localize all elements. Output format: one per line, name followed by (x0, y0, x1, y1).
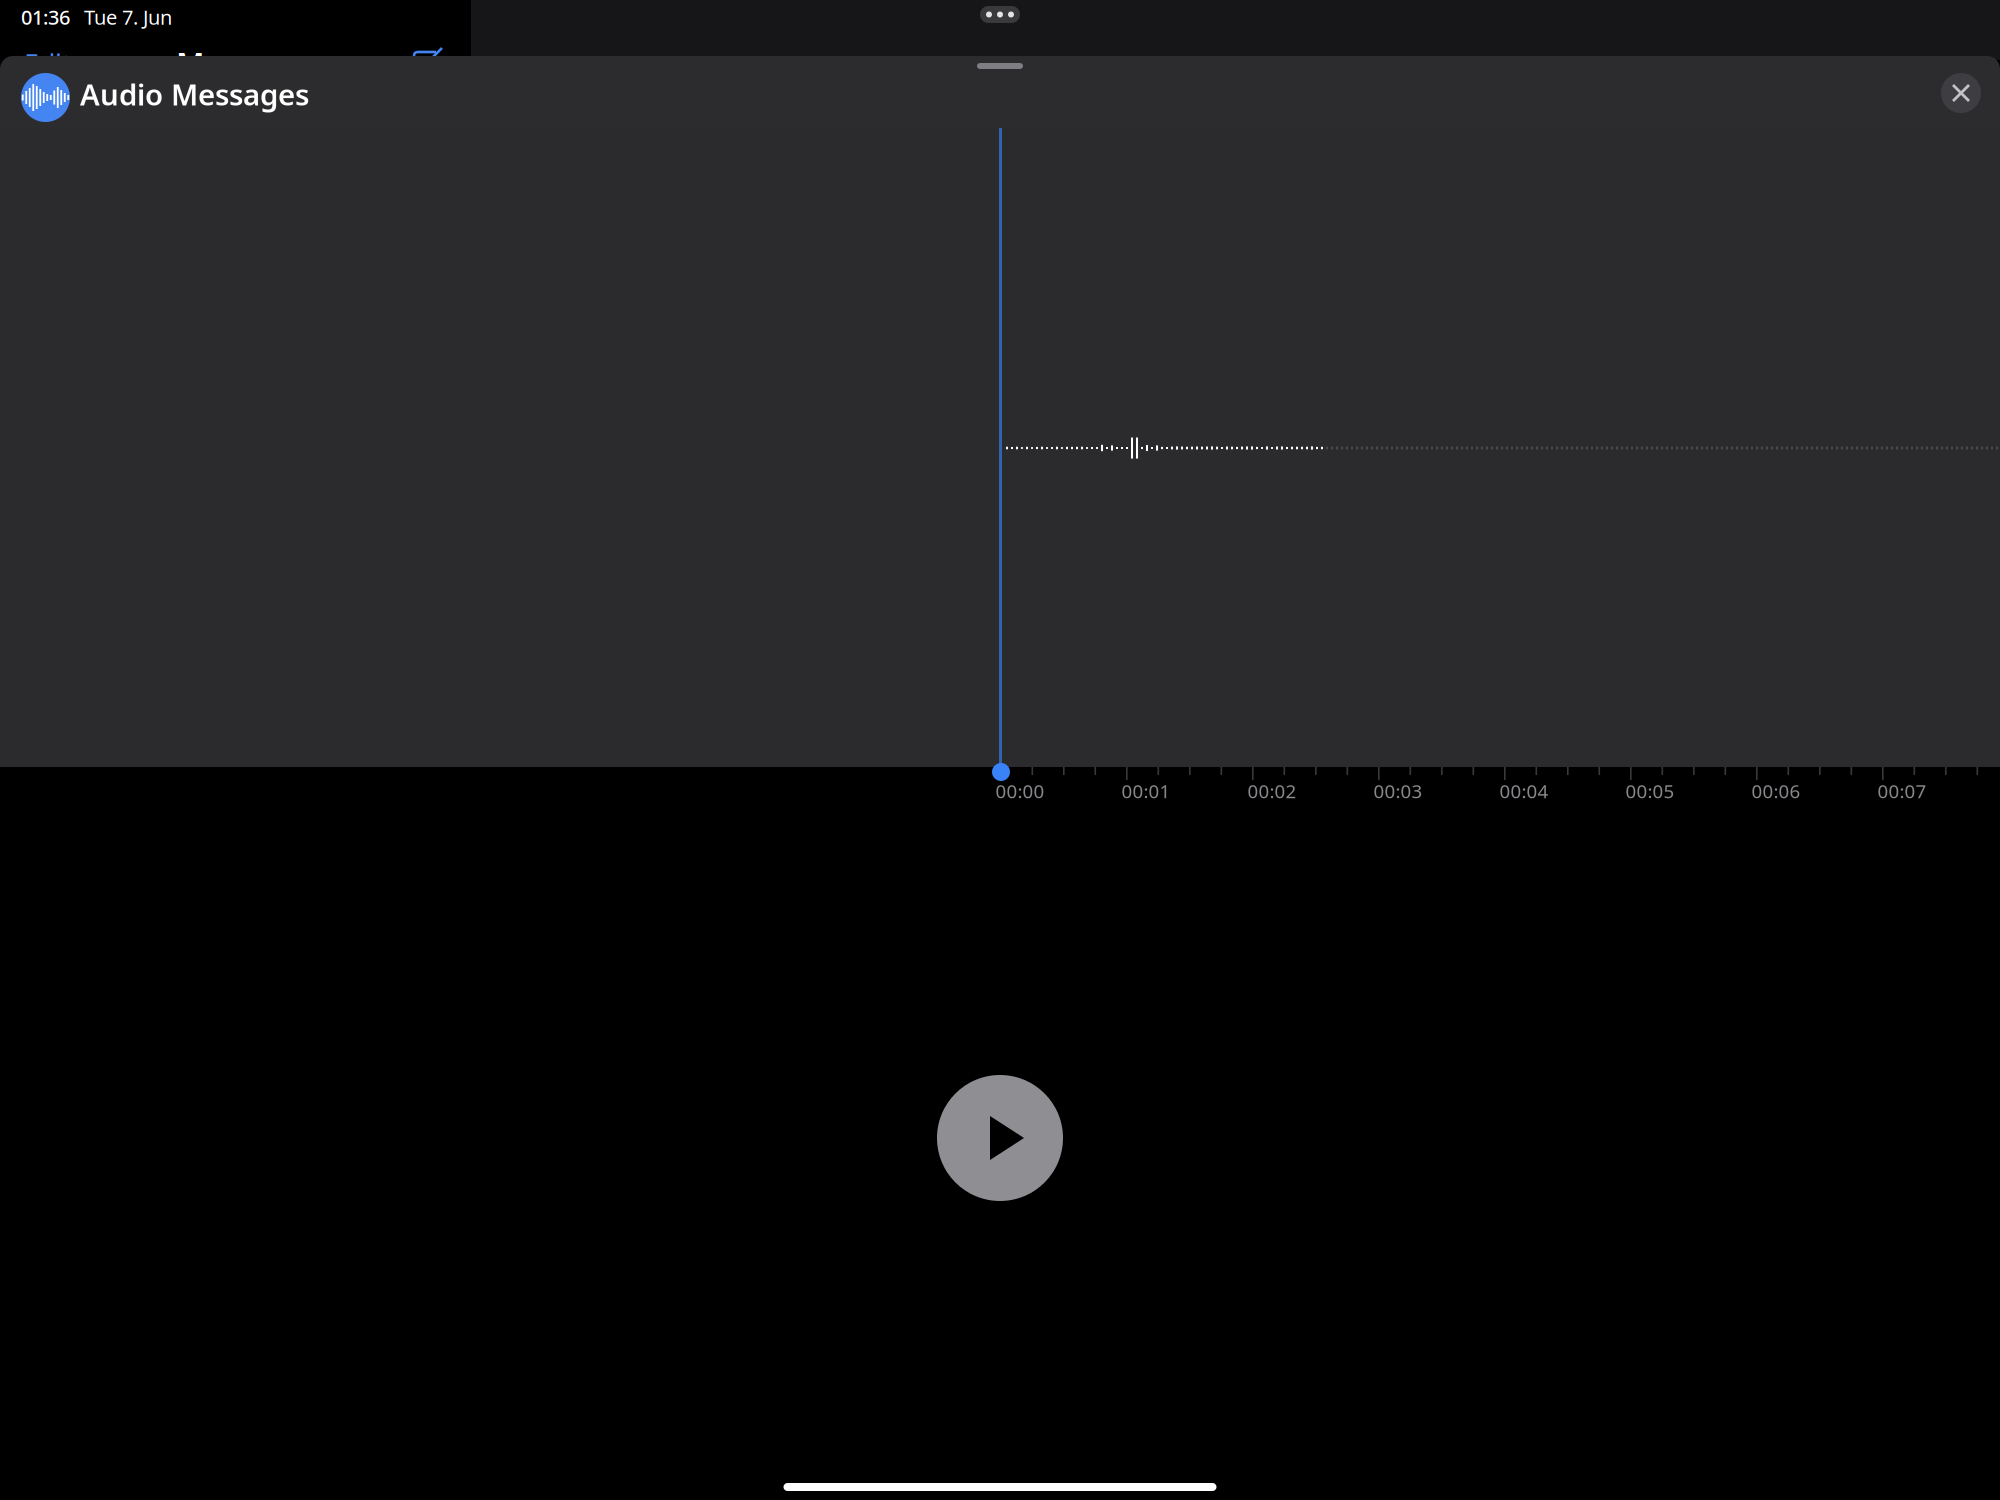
staticText: 00:00 (995, 779, 1044, 803)
staticText: Messages (176, 43, 322, 83)
staticText: 00:05 (1625, 779, 1674, 803)
staticText: Edit (24, 46, 72, 82)
staticText: 00:03 (1373, 779, 1422, 803)
staticText: Audio Messages (80, 74, 309, 113)
button[interactable]: Play (937, 1075, 1063, 1201)
button[interactable]: Edit (24, 50, 84, 78)
staticText: 00:04 (1499, 779, 1548, 803)
staticText: 00:02 (1247, 779, 1296, 803)
staticText: 00:01 (1121, 779, 1170, 803)
button[interactable]: Close (1941, 73, 1981, 113)
button[interactable]: Compose (414, 48, 454, 76)
staticText: 01:36 (21, 4, 70, 30)
staticText: 00:07 (1877, 779, 1926, 803)
button[interactable]: Multitasking controls (980, 6, 1020, 23)
staticText: 00:06 (1751, 779, 1800, 803)
staticText: Tue 7. Jun (84, 4, 172, 30)
